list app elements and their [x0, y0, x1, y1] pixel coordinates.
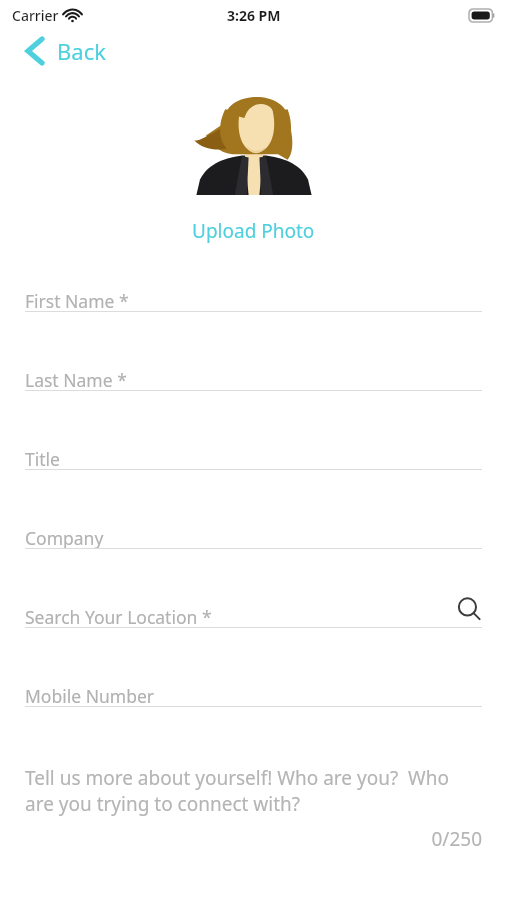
- button[interactable]: Upload Photo: [184, 215, 323, 247]
- staticText: Company: [25, 526, 104, 550]
- staticText: Upload Photo: [192, 218, 315, 244]
- button[interactable]: Company: [25, 506, 482, 585]
- other: Search: [456, 596, 482, 622]
- staticText: Carrier: [12, 6, 59, 25]
- button[interactable]: Title: [25, 427, 482, 506]
- button[interactable]: Search Your Location *: [25, 585, 482, 664]
- staticText: Mobile Number: [25, 684, 155, 708]
- staticText: 3:26 PM: [227, 6, 281, 25]
- staticText: Last Name *: [25, 368, 127, 392]
- button[interactable]: Tell us more about yourself! Who are you…: [25, 765, 482, 852]
- staticText: Tell us more about yourself! Who are you…: [25, 765, 482, 816]
- staticText: Back: [57, 36, 106, 66]
- button[interactable]: First Name *: [25, 269, 482, 348]
- button[interactable]: Mobile Number: [25, 664, 482, 743]
- staticText: Search Your Location *: [25, 605, 212, 629]
- staticText: Title: [25, 447, 60, 471]
- staticText: First Name *: [25, 289, 129, 313]
- button[interactable]: Back: [18, 30, 112, 72]
- button[interactable]: Last Name *: [25, 348, 482, 427]
- staticText: 0/250: [25, 826, 482, 852]
